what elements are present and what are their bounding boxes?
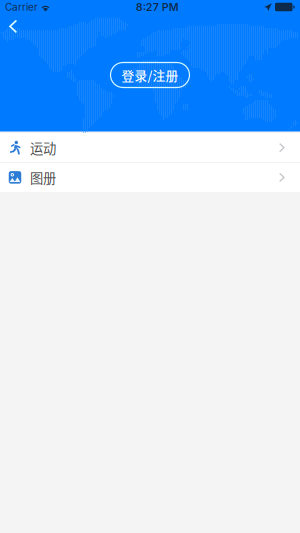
button[interactable]: Back (0, 15, 28, 37)
staticText: 图册 (30, 168, 56, 187)
button[interactable]: 登录/注册 (110, 62, 189, 87)
staticText: 8:27 PM (136, 0, 179, 13)
staticText: Carrier (5, 1, 38, 13)
button[interactable]: 运动 (0, 133, 300, 162)
staticText: 登录/注册 (121, 66, 178, 84)
staticText: 运动 (30, 138, 56, 157)
button[interactable]: 图册 (0, 163, 300, 192)
